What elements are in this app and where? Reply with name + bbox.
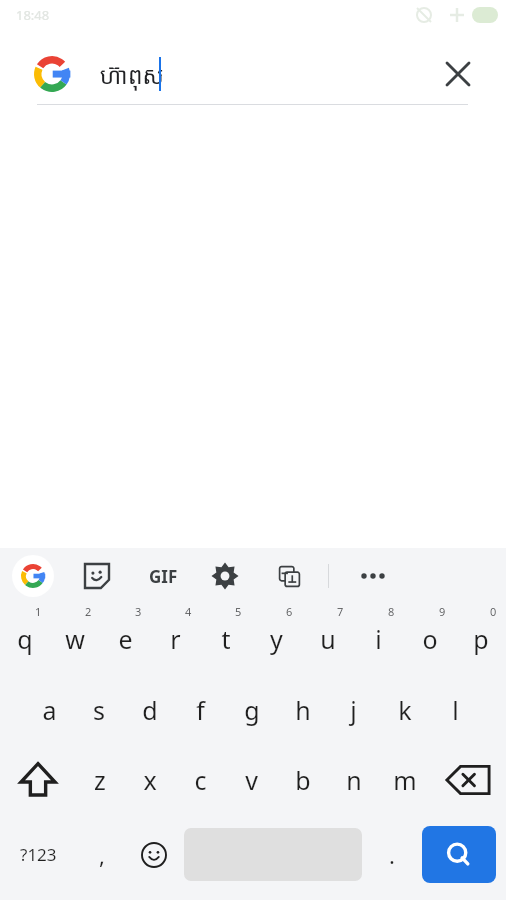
button[interactable]: ?123	[0, 815, 76, 894]
button[interactable]: f	[175, 675, 226, 745]
staticText: ?123	[20, 843, 57, 866]
staticText: h	[295, 693, 311, 727]
staticText: f	[196, 693, 205, 727]
button[interactable]: o	[404, 603, 455, 675]
button[interactable]: k	[379, 675, 430, 745]
staticText: 2	[85, 604, 92, 619]
staticText: 4	[185, 604, 192, 619]
button[interactable]: More options	[351, 554, 395, 598]
button[interactable]: i	[353, 603, 404, 675]
staticText: i	[375, 622, 382, 656]
button[interactable]: Search	[422, 826, 496, 883]
staticText: 7	[337, 604, 344, 619]
button[interactable]: z	[75, 745, 125, 815]
button[interactable]: .	[366, 815, 418, 894]
staticText: 5	[235, 604, 242, 619]
button[interactable]: b	[277, 745, 328, 815]
button[interactable]: j	[328, 675, 379, 745]
staticText: y	[270, 622, 283, 656]
button[interactable]: n	[328, 745, 379, 815]
staticText: o	[422, 622, 438, 656]
button[interactable]: m	[379, 745, 430, 815]
staticText: a	[42, 693, 57, 727]
button[interactable]: t	[200, 603, 251, 675]
staticText: u	[320, 622, 336, 656]
staticText: s	[93, 693, 105, 727]
button[interactable]: u	[302, 603, 353, 675]
button[interactable]: Translate	[268, 555, 310, 597]
staticText: .	[389, 840, 395, 870]
staticText: 8	[388, 604, 395, 619]
staticText: j	[350, 693, 357, 727]
staticText: k	[398, 693, 412, 727]
button[interactable]: Clear	[438, 54, 478, 94]
staticText: GIF	[149, 565, 178, 588]
staticText: w	[65, 622, 85, 656]
button[interactable]: h	[277, 675, 328, 745]
staticText: 6	[286, 604, 293, 619]
staticText: v	[245, 763, 258, 797]
button[interactable]: Stickers	[76, 555, 118, 597]
button[interactable]: e	[100, 603, 150, 675]
button[interactable]: c	[175, 745, 226, 815]
button[interactable]: l	[430, 675, 481, 745]
staticText: e	[118, 622, 133, 656]
staticText: p	[473, 622, 489, 656]
staticText: l	[452, 693, 459, 727]
staticText: 9	[439, 604, 446, 619]
button[interactable]: a	[24, 675, 74, 745]
button[interactable]: s	[74, 675, 124, 745]
button[interactable]: y	[251, 603, 302, 675]
button[interactable]: ,	[76, 815, 128, 894]
staticText: d	[142, 693, 158, 727]
button[interactable]: r	[150, 603, 200, 675]
staticText: b	[295, 763, 311, 797]
button[interactable]: d	[124, 675, 175, 745]
button[interactable]: g	[226, 675, 277, 745]
staticText: r	[170, 622, 181, 656]
staticText: 1	[35, 604, 42, 619]
staticText: c	[194, 763, 207, 797]
button[interactable]: Backspace	[430, 745, 506, 815]
button[interactable]: w	[50, 603, 100, 675]
button[interactable]: x	[125, 745, 175, 815]
button[interactable]: GIF	[140, 553, 186, 599]
staticText: q	[17, 622, 33, 656]
button[interactable]: p	[455, 603, 506, 675]
button[interactable]: Emoji	[128, 815, 180, 894]
staticText: ,	[99, 840, 105, 870]
staticText: 3	[135, 604, 142, 619]
staticText: 0	[490, 604, 497, 619]
button[interactable]: q	[0, 603, 50, 675]
staticText: t	[221, 622, 231, 656]
staticText: x	[143, 763, 157, 797]
staticText: ហ៊ាពុស	[100, 59, 164, 90]
staticText: z	[94, 763, 106, 797]
staticText: n	[346, 763, 362, 797]
staticText: m	[393, 763, 417, 797]
button[interactable]: Settings	[204, 555, 246, 597]
staticText: g	[244, 693, 260, 727]
button[interactable]: Google Search	[12, 555, 54, 597]
button[interactable]: v	[226, 745, 277, 815]
button[interactable]: Google	[34, 56, 70, 92]
staticText: 18:48	[16, 6, 50, 24]
button[interactable]: Shift	[0, 745, 75, 815]
